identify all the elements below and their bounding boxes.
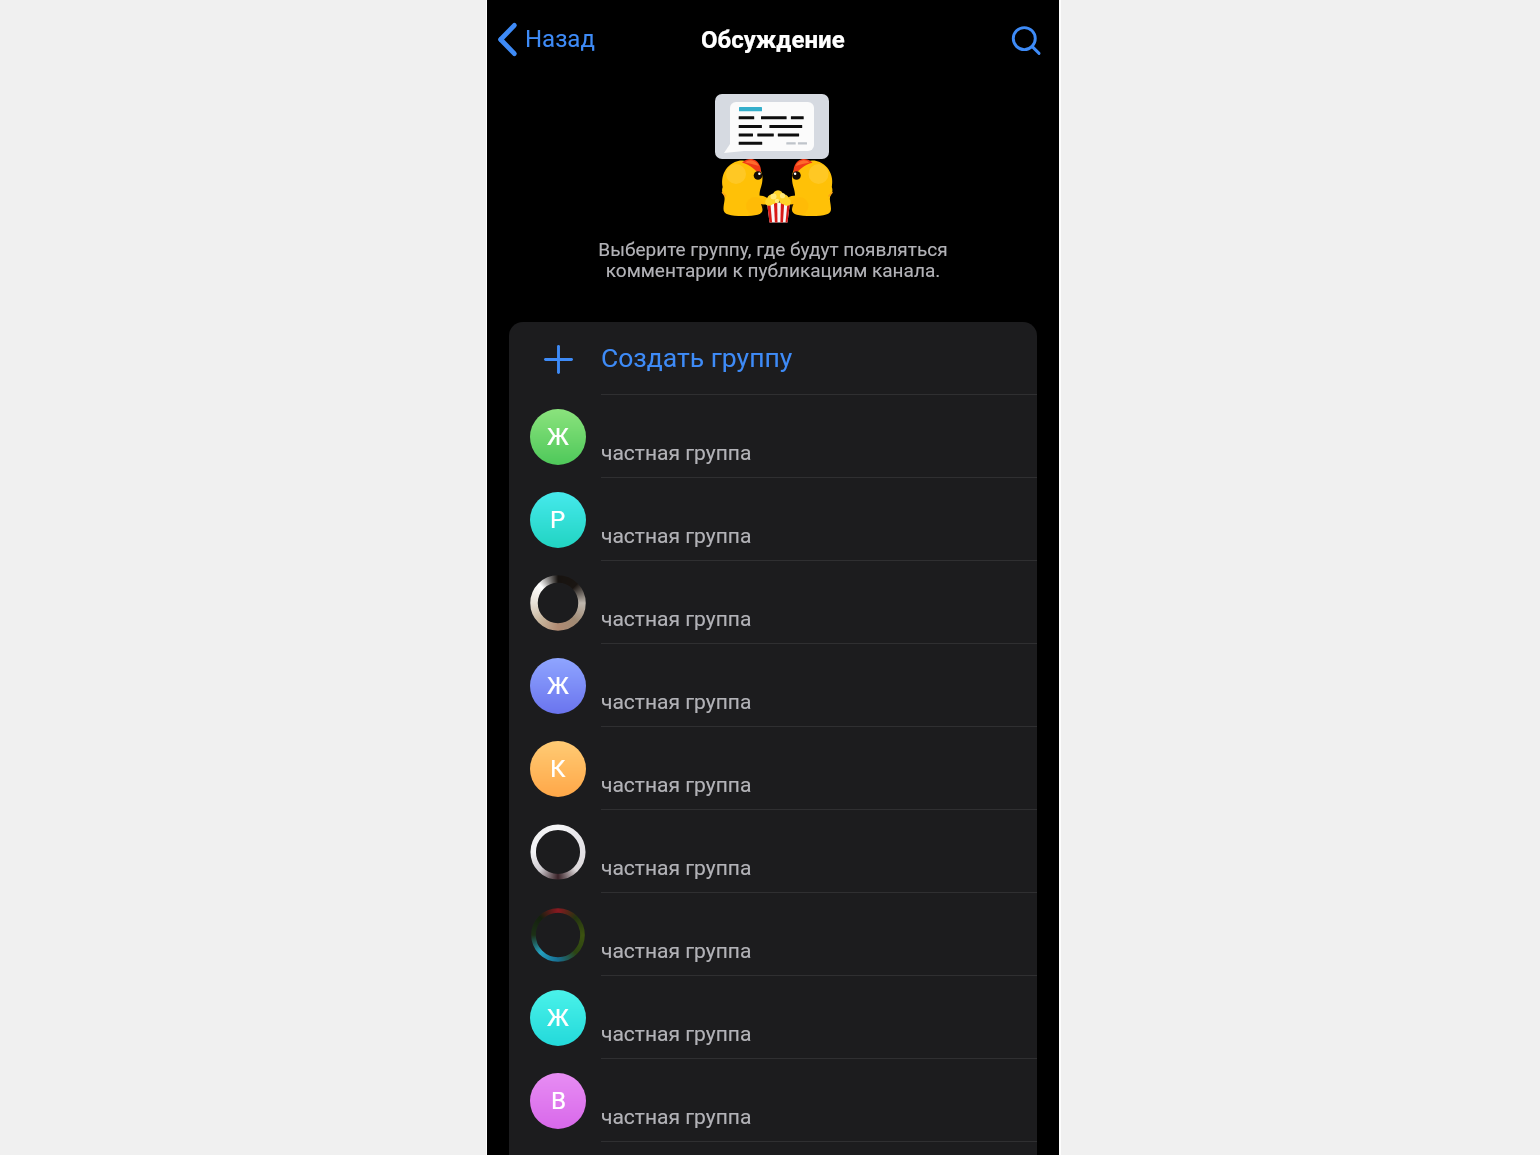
staticText: Назад: [525, 25, 595, 53]
staticText: Обсуждение: [701, 26, 845, 54]
button[interactable]: Р: [509, 478, 1037, 561]
staticText: В: [551, 1087, 566, 1115]
staticText: Ж: [547, 672, 569, 700]
button[interactable]: частная группа: [509, 893, 1037, 976]
staticText: частная группа: [601, 690, 752, 715]
staticText: Ж: [547, 423, 569, 451]
staticText: Ж: [547, 1004, 569, 1032]
staticText: Р: [550, 506, 566, 534]
staticText: частная группа: [601, 856, 752, 881]
staticText: К: [550, 755, 566, 783]
button[interactable]: частная группа: [509, 561, 1037, 644]
button[interactable]: частная группа: [509, 810, 1037, 893]
button[interactable]: Назад: [492, 18, 601, 61]
staticText: Создать группу: [601, 342, 793, 373]
staticText: частная группа: [601, 607, 752, 632]
button[interactable]: Search: [1005, 20, 1049, 64]
staticText: Выберите группу, где будут появляться ко…: [598, 238, 948, 282]
button[interactable]: В: [509, 1059, 1037, 1142]
button[interactable]: Ж: [509, 644, 1037, 727]
button[interactable]: Ж: [509, 395, 1037, 478]
button[interactable]: К: [509, 727, 1037, 810]
staticText: частная группа: [601, 1105, 752, 1130]
staticText: частная группа: [601, 441, 752, 466]
staticText: частная группа: [601, 524, 752, 549]
staticText: частная группа: [601, 939, 752, 964]
button[interactable]: Создать группу: [509, 322, 1037, 395]
button[interactable]: Ж: [509, 976, 1037, 1059]
staticText: частная группа: [601, 1022, 752, 1047]
staticText: частная группа: [601, 773, 752, 798]
